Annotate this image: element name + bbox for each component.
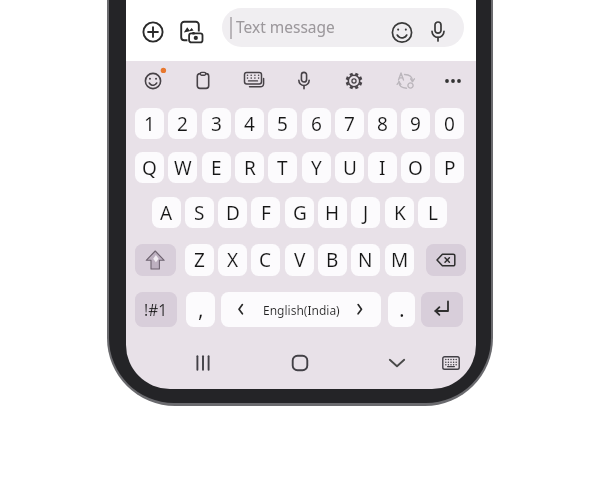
staticText: D	[226, 200, 240, 226]
staticText: 9	[410, 111, 421, 137]
button[interactable]: F	[251, 197, 280, 228]
button[interactable]	[186, 64, 220, 98]
staticText: B	[326, 247, 339, 273]
button[interactable]: T	[268, 152, 297, 183]
button[interactable]	[436, 64, 470, 98]
button[interactable]: 9	[401, 108, 430, 139]
button[interactable]: Q	[135, 152, 164, 183]
button[interactable]: Text message	[222, 8, 464, 47]
staticText: Z	[194, 247, 205, 273]
staticText: !#1	[144, 299, 168, 320]
button[interactable]: 4	[235, 108, 264, 139]
staticText: S	[194, 200, 205, 226]
button[interactable]: L	[418, 197, 447, 228]
button[interactable]	[186, 346, 220, 380]
staticText: T	[277, 155, 288, 181]
staticText: M	[391, 247, 409, 273]
button[interactable]: 6	[302, 108, 331, 139]
button[interactable]	[287, 64, 321, 98]
staticText: I	[379, 155, 386, 181]
staticText: ,	[198, 295, 204, 324]
button[interactable]: P	[435, 152, 464, 183]
staticText: Q	[142, 155, 157, 181]
staticText: 3	[211, 111, 222, 137]
button[interactable]: H	[318, 197, 347, 228]
button[interactable]	[426, 244, 466, 276]
staticText: .	[399, 295, 405, 324]
button[interactable]: 1	[135, 108, 164, 139]
button[interactable]: N	[351, 244, 380, 276]
staticText: J	[363, 200, 369, 226]
staticText: C	[259, 247, 272, 273]
button[interactable]: R	[235, 152, 264, 183]
staticText: K	[394, 200, 406, 226]
button[interactable]	[135, 244, 176, 276]
button[interactable]	[136, 64, 170, 98]
button[interactable]: V	[285, 244, 314, 276]
staticText: 4	[244, 111, 255, 137]
button[interactable]: D	[218, 197, 247, 228]
button[interactable]: K	[385, 197, 414, 228]
button[interactable]: G	[285, 197, 314, 228]
button[interactable]: X	[218, 244, 247, 276]
staticText: L	[428, 200, 438, 226]
button[interactable]	[237, 64, 271, 98]
button[interactable]	[380, 346, 414, 380]
button[interactable]	[385, 15, 419, 49]
staticText: 6	[311, 111, 322, 137]
button[interactable]	[283, 346, 317, 380]
button[interactable]	[136, 15, 170, 49]
staticText: H	[325, 200, 340, 226]
button[interactable]: ,	[186, 292, 215, 327]
staticText: G	[293, 200, 307, 226]
button[interactable]: 0	[435, 108, 464, 139]
button[interactable]: .	[388, 292, 415, 327]
staticText: F	[261, 200, 271, 226]
button[interactable]: 2	[168, 108, 197, 139]
button[interactable]: C	[251, 244, 280, 276]
button[interactable]: 3	[202, 108, 231, 139]
button[interactable]: E	[202, 152, 231, 183]
button[interactable]: 5	[268, 108, 297, 139]
staticText: Y	[311, 155, 322, 181]
staticText: R	[244, 155, 256, 181]
button[interactable]: !#1	[135, 292, 177, 327]
button[interactable]: O	[401, 152, 430, 183]
staticText: 2	[177, 111, 188, 137]
button[interactable]: S	[185, 197, 214, 228]
staticText: 1	[144, 111, 155, 137]
button[interactable]: U	[335, 152, 364, 183]
button[interactable]: Z	[185, 244, 214, 276]
button[interactable]: 7	[335, 108, 364, 139]
button[interactable]: B	[318, 244, 347, 276]
staticText: U	[343, 155, 357, 181]
staticText: E	[211, 155, 222, 181]
button[interactable]: W	[168, 152, 197, 183]
staticText: A	[160, 200, 173, 226]
staticText: P	[444, 155, 456, 181]
button[interactable]: 8	[368, 108, 397, 139]
button[interactable]: J	[351, 197, 380, 228]
staticText: 5	[277, 111, 288, 137]
button[interactable]	[434, 346, 468, 380]
button[interactable]: Y	[302, 152, 331, 183]
staticText: O	[408, 155, 423, 181]
staticText: English(India)	[263, 302, 340, 318]
button[interactable]: I	[368, 152, 397, 183]
button[interactable]: A	[152, 197, 181, 228]
staticText: Text message	[236, 16, 335, 37]
button[interactable]: English(India)	[221, 292, 381, 327]
button[interactable]	[421, 15, 455, 49]
staticText: 7	[344, 111, 355, 137]
staticText: N	[358, 247, 373, 273]
staticText: 0	[444, 111, 455, 137]
staticText: W	[174, 155, 192, 181]
staticText: V	[294, 247, 306, 273]
button[interactable]	[389, 64, 423, 98]
button[interactable]	[170, 11, 210, 51]
button[interactable]: M	[385, 244, 414, 276]
button[interactable]	[337, 64, 371, 98]
staticText: X	[227, 247, 239, 273]
button[interactable]	[421, 292, 463, 327]
staticText: 8	[377, 111, 388, 137]
